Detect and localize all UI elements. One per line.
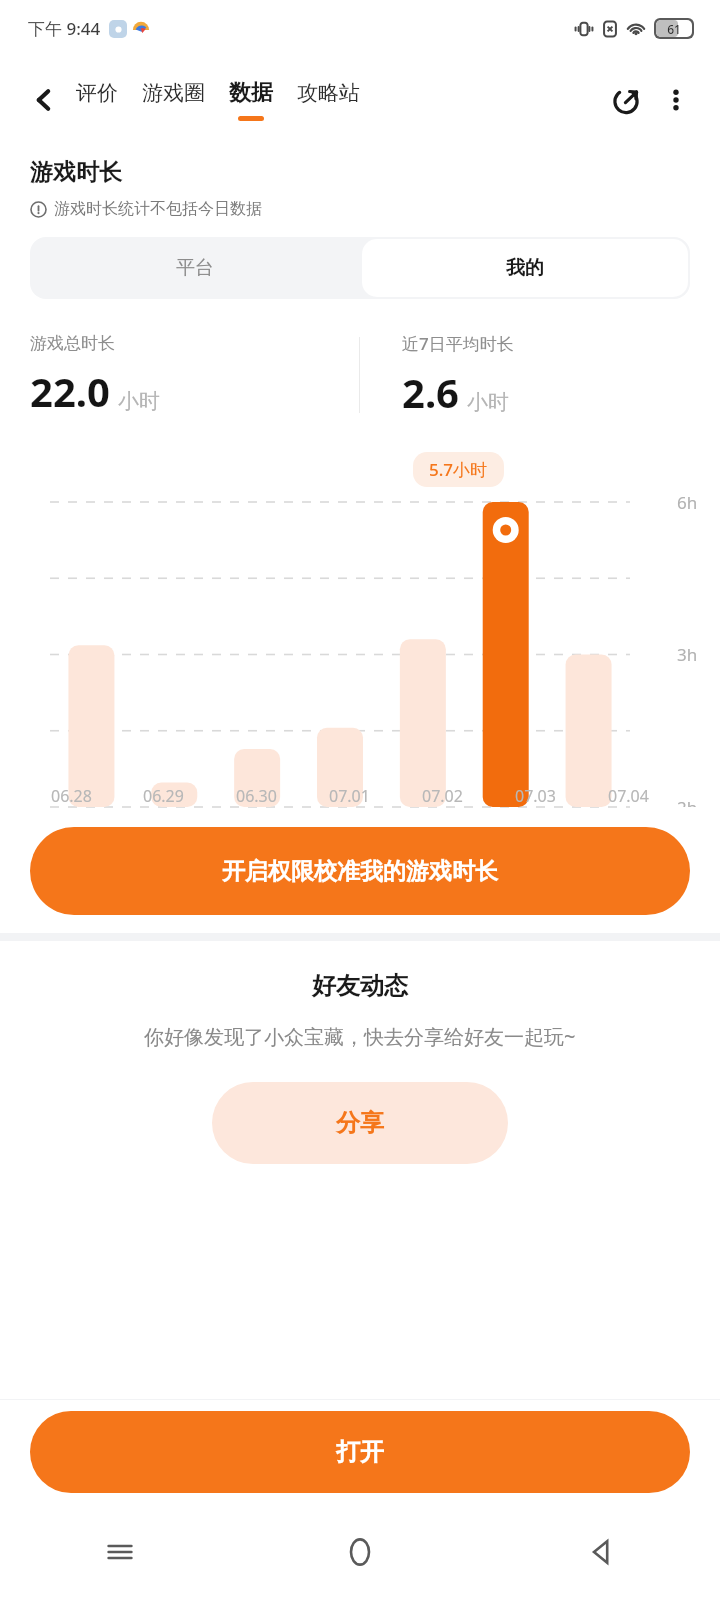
button[interactable]: 打开 (30, 1411, 690, 1493)
staticText: 好友动态 (312, 971, 408, 1001)
staticText: 2.6 (402, 365, 459, 419)
staticText: 3h (677, 643, 698, 666)
button[interactable]: Home (240, 1504, 480, 1600)
staticText: 07.03 (515, 785, 556, 807)
button[interactable]: 平台 (30, 237, 360, 299)
staticText: 攻略站 (297, 80, 360, 106)
button[interactable]: Back (22, 78, 66, 122)
button[interactable]: 我的 (362, 239, 688, 297)
staticText: 22.0 (30, 364, 110, 418)
button[interactable]: 评价 (76, 76, 118, 124)
button[interactable]: 分享 (212, 1082, 508, 1164)
button[interactable]: 游戏圈 (142, 76, 205, 124)
staticText: 游戏总时长 (30, 333, 115, 354)
staticText: 游戏时长统计不包括今日数据 (54, 199, 262, 219)
staticText: 平台 (176, 256, 214, 280)
staticText: 分享 (336, 1108, 384, 1138)
button[interactable]: 开启权限校准我的游戏时长 (30, 827, 690, 915)
staticText: 开启权限校准我的游戏时长 (222, 857, 498, 886)
button[interactable]: Back (480, 1504, 720, 1600)
staticText: 下午 9:44 (28, 17, 101, 40)
button[interactable]: Recent apps (0, 1504, 240, 1600)
button[interactable]: 数据 (229, 75, 273, 125)
button[interactable]: More options (654, 78, 698, 122)
staticText: 你好像发现了小众宝藏，快去分享给好友一起玩~ (144, 1023, 576, 1050)
button[interactable]: Share (604, 78, 648, 122)
staticText: 数据 (229, 79, 273, 107)
staticText: 小时 (118, 388, 160, 414)
staticText: 打开 (336, 1437, 384, 1467)
button[interactable]: 攻略站 (297, 76, 360, 124)
staticText: 评价 (76, 80, 118, 106)
staticText: 游戏时长 (30, 158, 122, 187)
staticText: 61 (656, 21, 692, 37)
staticText: 游戏圈 (142, 80, 205, 106)
staticText: 小时 (467, 389, 509, 415)
staticText: 07.01 (329, 785, 370, 807)
staticText: 我的 (506, 256, 544, 280)
staticText: 06.30 (236, 785, 277, 807)
staticText: 06.29 (143, 785, 184, 807)
staticText: 07.02 (422, 785, 463, 807)
staticText: 06.28 (51, 785, 92, 807)
staticText: 近7日平均时长 (402, 332, 514, 355)
staticText: 5.7小时 (429, 458, 488, 481)
staticText: 2h (677, 796, 698, 807)
staticText: 07.04 (608, 785, 649, 807)
staticText: 6h (677, 491, 698, 514)
